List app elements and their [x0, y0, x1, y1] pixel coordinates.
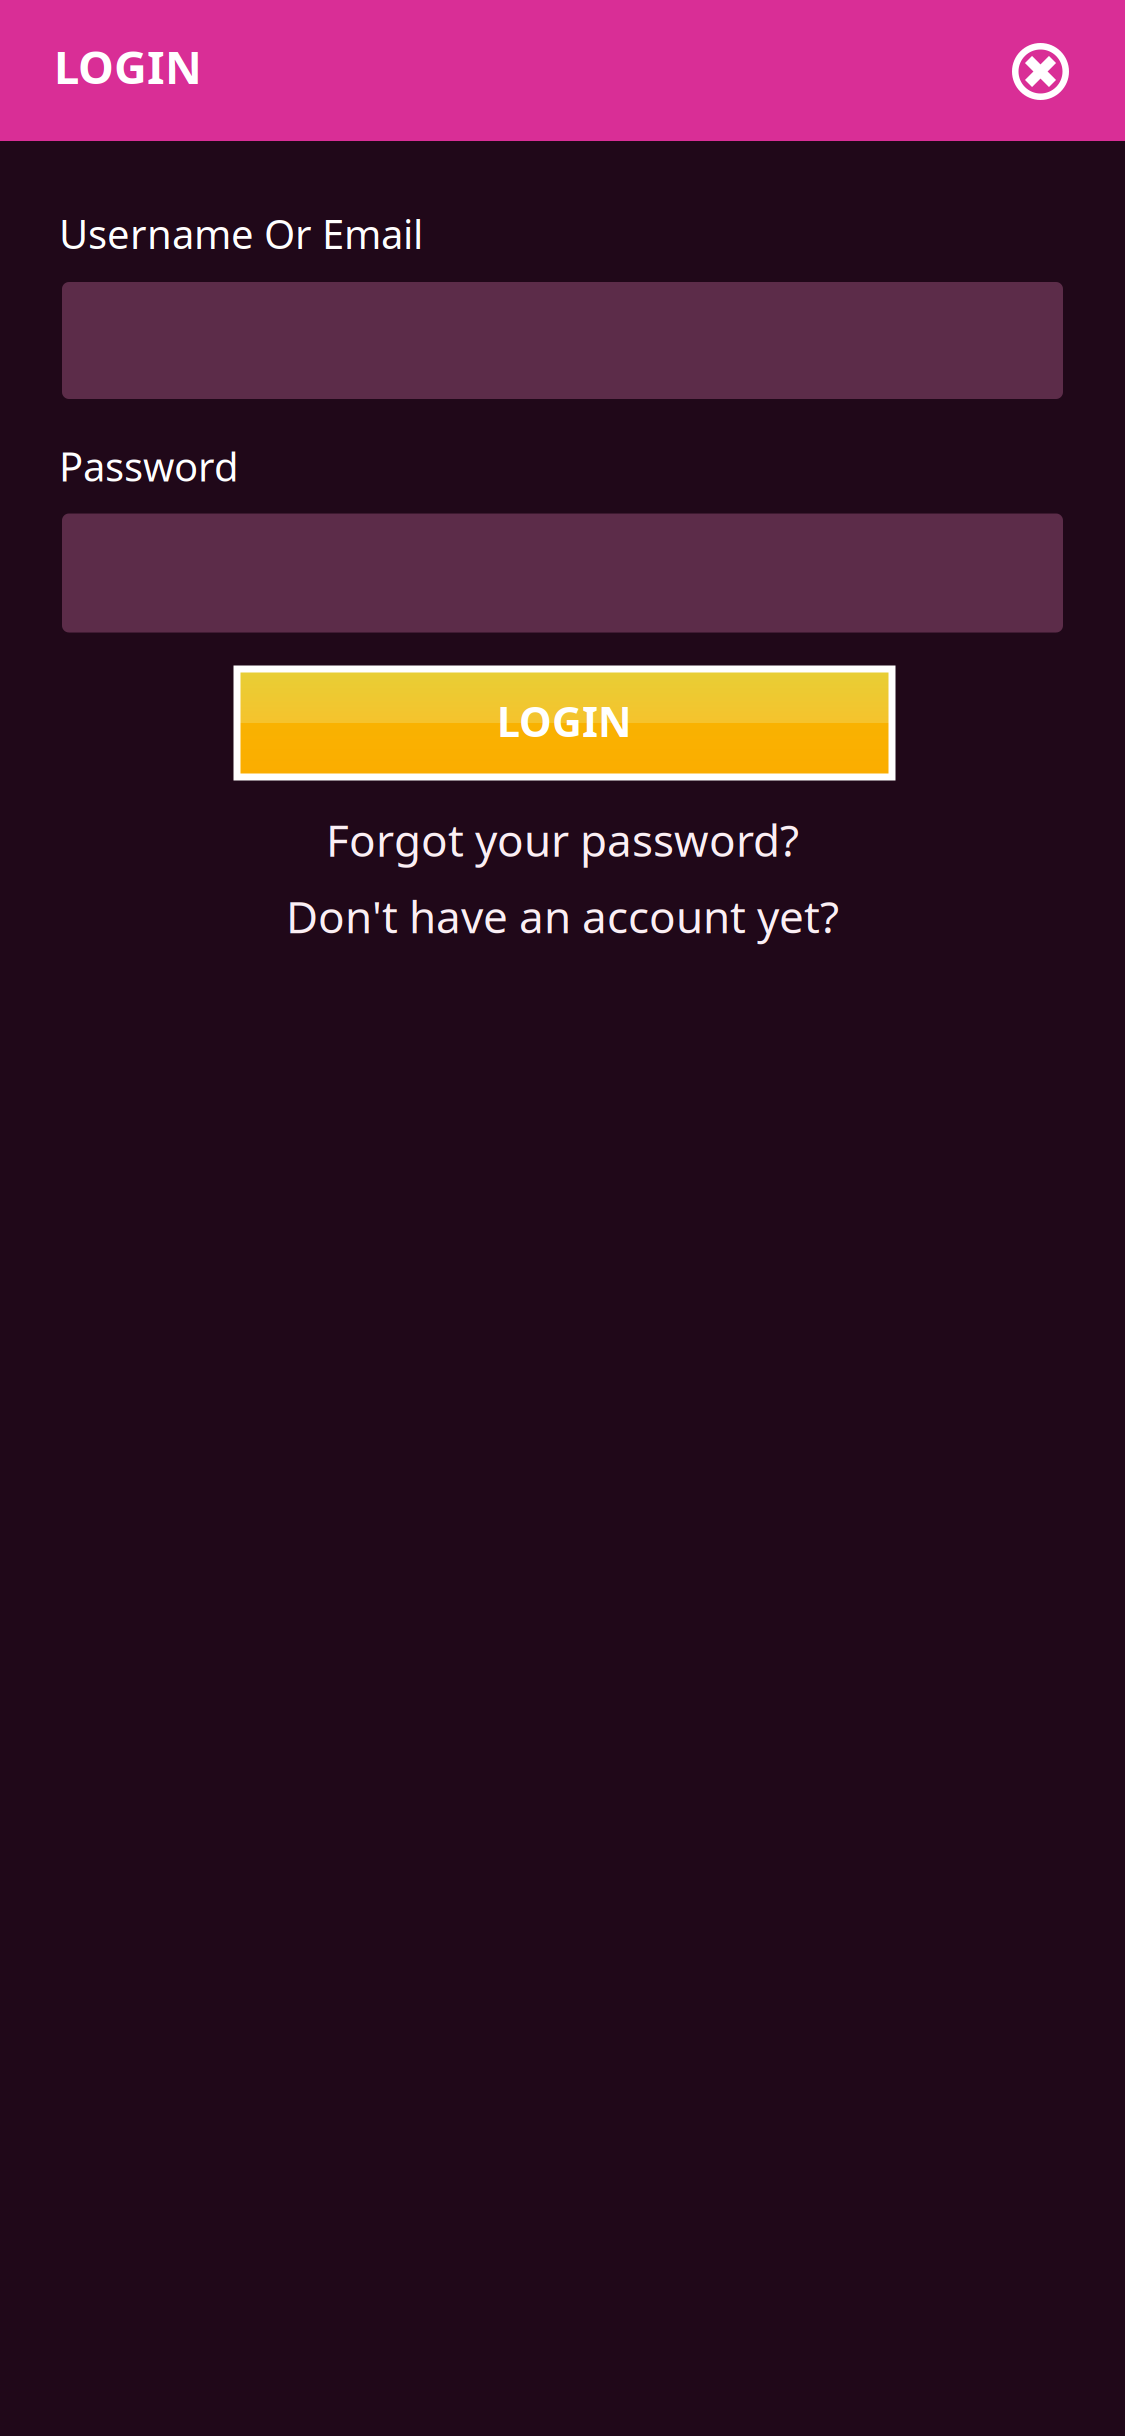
- staticText: Don't have an account yet?: [286, 887, 839, 945]
- staticText: Username Or Email: [59, 207, 423, 260]
- staticText: Password: [59, 439, 239, 492]
- button[interactable]: LOGIN: [233, 665, 895, 780]
- button[interactable]: Forgot your password?: [62, 810, 1063, 869]
- staticText: LOGIN: [497, 694, 632, 748]
- button[interactable]: Don't have an account yet?: [62, 887, 1063, 945]
- staticText: LOGIN: [54, 36, 202, 97]
- staticText: Forgot your password?: [326, 810, 799, 869]
- button[interactable]: Close: [988, 20, 1069, 121]
